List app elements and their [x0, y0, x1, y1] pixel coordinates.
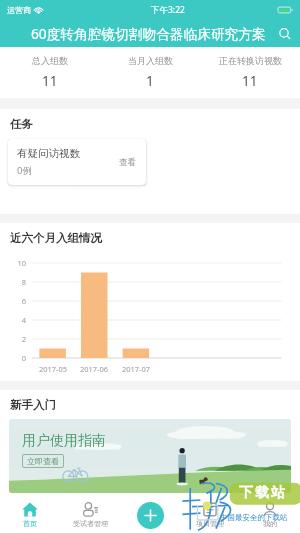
staticText: 运营商: [7, 5, 31, 15]
staticText: 60度转角腔镜切割吻合器临床研究方案: [31, 24, 266, 43]
button[interactable]: Add: [137, 502, 164, 529]
staticText: 新手入门: [10, 398, 56, 412]
button[interactable]: 当月入组数: [100, 47, 200, 98]
staticText: 查看: [119, 157, 136, 168]
button[interactable]: 正在转换访视数: [200, 47, 300, 98]
staticText: 2: [5, 334, 26, 344]
staticText: 总入组数: [32, 55, 68, 66]
staticText: 正在转换访视数: [219, 55, 282, 66]
staticText: 11: [42, 72, 58, 90]
button[interactable]: 用户使用指南: [9, 419, 291, 493]
staticText: 2017-05: [32, 364, 74, 374]
button[interactable]: 总入组数: [0, 47, 100, 98]
staticText: 11: [242, 72, 258, 90]
staticText: 受试者管理: [73, 519, 108, 528]
button[interactable]: Search: [275, 24, 295, 44]
staticText: 立即查看: [27, 456, 59, 466]
button[interactable]: 项目管理: [180, 497, 240, 533]
button[interactable]: 受试者管理: [60, 497, 120, 533]
staticText: 6: [5, 296, 26, 306]
button[interactable]: 首页: [0, 497, 60, 533]
button[interactable]: 我的: [240, 497, 300, 533]
staticText: 2017-06: [73, 364, 115, 374]
staticText: 0: [5, 353, 26, 363]
staticText: 10: [5, 258, 26, 268]
staticText: 用户使用指南: [22, 432, 106, 450]
staticText: 中国最安全的下载站: [220, 513, 288, 522]
staticText: 1: [146, 72, 154, 90]
staticText: 近六个月入组情况: [10, 231, 102, 245]
button[interactable]: 有疑问访视数: [8, 139, 146, 185]
button[interactable]: 立即查看: [27, 456, 59, 466]
staticText: 下载站: [238, 484, 286, 502]
staticText: 8: [5, 277, 26, 287]
staticText: 下午3:22: [151, 4, 185, 16]
staticText: 我的: [263, 519, 277, 528]
staticText: 当月入组数: [128, 55, 173, 66]
staticText: 首页: [23, 519, 37, 528]
staticText: 有疑问访视数: [17, 147, 80, 160]
staticText: 4: [5, 315, 26, 325]
staticText: 2017-07: [115, 364, 157, 374]
staticText: 项目管理: [196, 519, 224, 528]
staticText: 0例: [17, 164, 32, 177]
staticText: 任务: [10, 117, 33, 131]
